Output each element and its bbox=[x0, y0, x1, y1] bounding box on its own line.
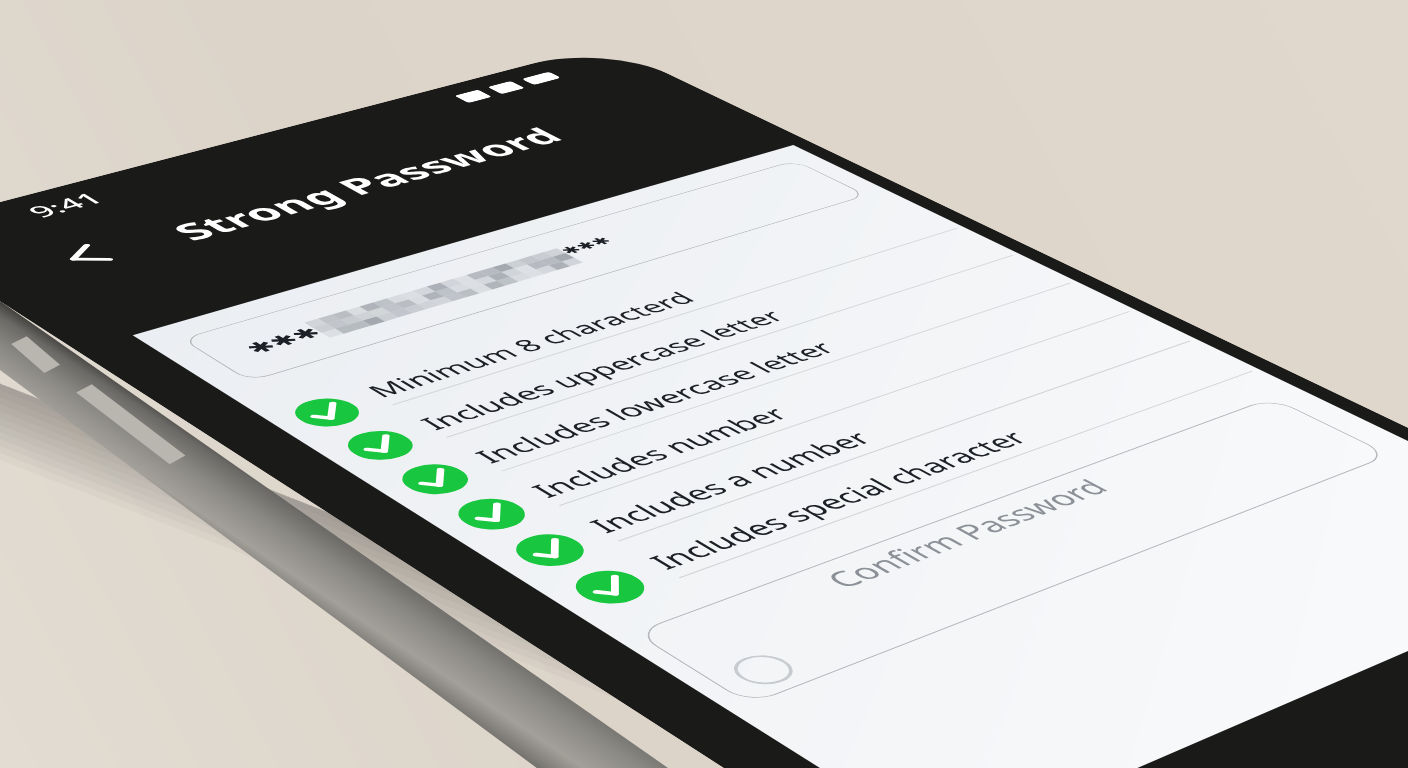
button[interactable]: Includes uppercase letter bbox=[322, 235, 1023, 472]
button[interactable]: Confirm Password bbox=[633, 397, 1391, 705]
staticText: Minimum 8 characterd bbox=[357, 287, 704, 402]
button[interactable]: Includes special character bbox=[548, 348, 1264, 617]
staticText: Includes lowercase letter bbox=[464, 336, 845, 468]
staticText: Includes special character bbox=[638, 424, 1038, 575]
button[interactable]: Includes a number bbox=[489, 319, 1202, 579]
staticText: ✱✱✱ bbox=[239, 324, 328, 357]
button[interactable]: Back bbox=[41, 237, 133, 274]
staticText: Includes a number bbox=[578, 425, 881, 538]
staticText: Includes uppercase letter bbox=[410, 305, 793, 434]
button[interactable]: Includes lowercase letter bbox=[376, 262, 1081, 506]
staticText: ✱✱✱ bbox=[556, 234, 617, 256]
staticText: Confirm Password bbox=[813, 473, 1118, 594]
button[interactable]: ✱✱✱ bbox=[180, 160, 868, 382]
staticText: Strong Password bbox=[159, 121, 576, 247]
staticText: Includes number bbox=[520, 401, 797, 502]
button[interactable]: Minimum 8 characterd bbox=[270, 209, 967, 438]
button[interactable]: Includes number bbox=[432, 290, 1141, 542]
staticText: 9:41 bbox=[18, 187, 112, 222]
